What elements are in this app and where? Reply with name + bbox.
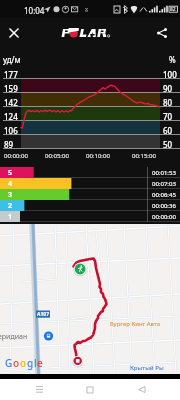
- staticText: x̲: [85, 5, 89, 13]
- button[interactable]: Home: [78, 379, 102, 400]
- staticText: 1: [8, 212, 13, 222]
- staticText: 60: [163, 125, 173, 136]
- staticText: 00:00:00: [152, 213, 176, 221]
- staticText: 4: [8, 179, 13, 189]
- button[interactable]: 5: [0, 167, 180, 178]
- staticText: 00:01:53: [152, 169, 176, 177]
- staticText: 00:06:45: [152, 191, 176, 199]
- staticText: G: [5, 356, 13, 370]
- staticText: g: [27, 356, 34, 370]
- button[interactable]: Share: [150, 21, 174, 45]
- staticText: уд/м: [3, 54, 21, 65]
- button[interactable]: 4: [0, 178, 180, 189]
- staticText: 124: [4, 111, 18, 122]
- staticText: 70: [163, 111, 173, 122]
- staticText: 00:15:00: [132, 152, 156, 160]
- button[interactable]: Route map: [0, 224, 180, 374]
- staticText: 82: [170, 6, 176, 13]
- button[interactable]: 1: [0, 211, 180, 222]
- staticText: 177: [4, 69, 18, 80]
- button[interactable]: Recent apps: [27, 379, 51, 400]
- staticText: 5: [8, 168, 13, 178]
- staticText: 10:04: [24, 5, 45, 16]
- staticText: 3: [8, 190, 13, 200]
- staticText: 00:00:36: [152, 202, 176, 210]
- staticText: o: [20, 356, 27, 370]
- staticText: 00:05:00: [45, 152, 69, 160]
- button[interactable]: Close: [2, 21, 26, 45]
- staticText: 00:00:00: [4, 152, 28, 160]
- staticText: 2: [8, 201, 13, 211]
- button[interactable]: Back: [129, 379, 153, 400]
- staticText: 159: [4, 83, 18, 94]
- staticText: e: [37, 356, 43, 370]
- staticText: %: [169, 54, 176, 65]
- staticText: 90: [163, 83, 173, 94]
- staticText: 80: [163, 97, 173, 108]
- staticText: еридиан: [0, 332, 28, 342]
- staticText: Бургер Кинг Авто: [110, 320, 161, 328]
- staticText: 00:10:00: [86, 152, 110, 160]
- staticText: 00:07:03: [152, 180, 176, 188]
- staticText: 142: [4, 97, 18, 108]
- staticText: o: [13, 356, 20, 370]
- staticText: 100: [163, 69, 177, 80]
- button[interactable]: 2: [0, 200, 180, 211]
- staticText: 89: [4, 139, 14, 150]
- staticText: A107: [37, 311, 50, 318]
- staticText: 106: [4, 125, 18, 136]
- button[interactable]: 3: [0, 189, 180, 200]
- staticText: 50: [163, 139, 173, 150]
- staticText: Крытый Ры: [130, 364, 164, 372]
- staticText: l: [34, 356, 37, 370]
